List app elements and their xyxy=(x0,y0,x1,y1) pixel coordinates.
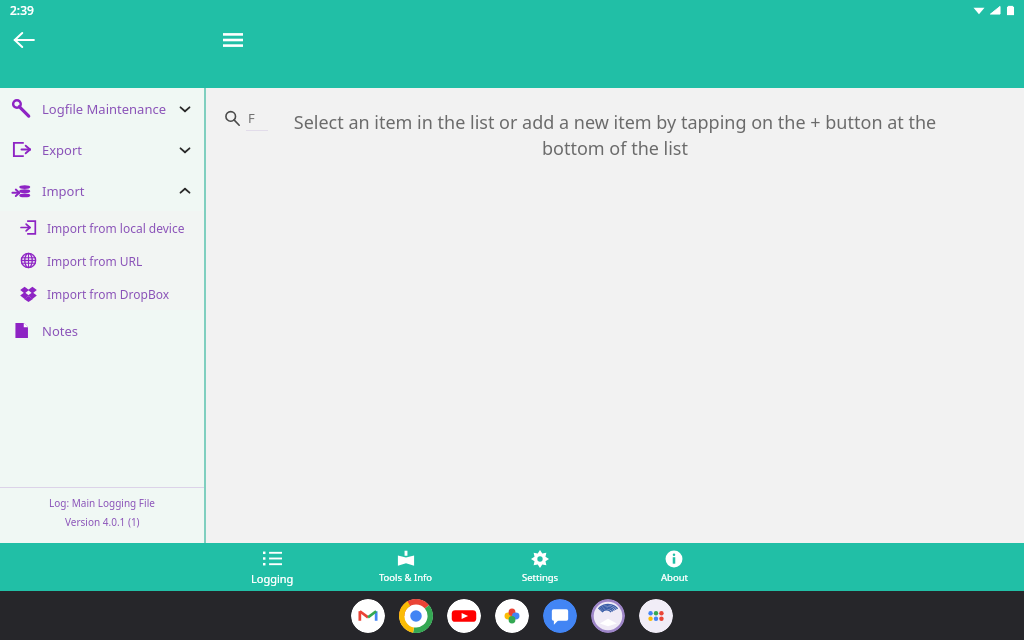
staticText: Import from local device xyxy=(47,220,185,236)
button[interactable]: App xyxy=(399,599,433,633)
staticText: Import xyxy=(42,182,85,200)
button[interactable]: Logging xyxy=(205,543,339,591)
button[interactable]: Notes xyxy=(0,310,204,351)
button[interactable]: Settings xyxy=(473,543,607,591)
staticText: 2:39 xyxy=(10,2,34,18)
staticText: Logging xyxy=(251,571,294,586)
button[interactable]: App xyxy=(591,599,625,633)
button[interactable]: Import from local device xyxy=(0,211,204,244)
button[interactable]: Export xyxy=(0,129,204,170)
button[interactable]: Import from URL xyxy=(0,244,204,277)
button[interactable]: Logfile Maintenance xyxy=(0,88,204,129)
staticText: Select an item in the list or add a new … xyxy=(270,110,960,161)
button[interactable]: Back xyxy=(6,22,42,58)
button[interactable]: F xyxy=(224,102,286,134)
staticText: Notes xyxy=(42,322,78,340)
button[interactable]: App xyxy=(447,599,481,633)
button[interactable]: About xyxy=(607,543,741,591)
staticText: Settings xyxy=(522,571,559,584)
button[interactable]: Import xyxy=(0,170,204,211)
staticText: Logfile Maintenance xyxy=(42,100,166,118)
button[interactable]: App xyxy=(543,599,577,633)
staticText: Import from URL xyxy=(47,253,143,269)
button[interactable]: App xyxy=(351,599,385,633)
staticText: Log: Main Logging File xyxy=(49,496,155,510)
staticText: Export xyxy=(42,141,83,159)
staticText: About xyxy=(661,571,688,584)
button[interactable]: App xyxy=(639,599,673,633)
staticText: F xyxy=(248,109,255,127)
button[interactable]: Tools & Info xyxy=(339,543,473,591)
button[interactable]: Menu xyxy=(215,22,251,58)
staticText: Tools & Info xyxy=(379,571,433,584)
staticText: Version 4.0.1 (1) xyxy=(65,515,140,529)
staticText: Import from DropBox xyxy=(47,286,170,302)
button[interactable]: Import from DropBox xyxy=(0,277,204,310)
button[interactable]: App xyxy=(495,599,529,633)
